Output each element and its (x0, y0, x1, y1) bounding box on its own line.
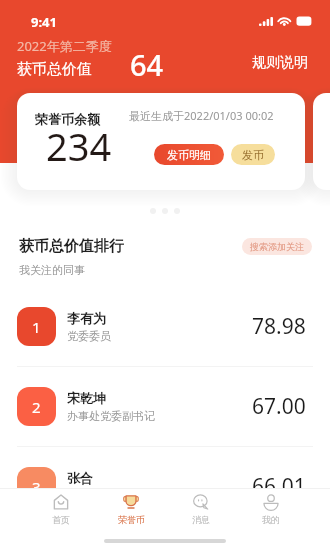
staticText: 发币明细 (167, 148, 211, 162)
staticText: 宋乾坤 (67, 390, 106, 406)
staticText: 消息 (192, 514, 210, 525)
staticText: 2 (32, 397, 41, 417)
staticText: 234 (46, 120, 112, 172)
staticText: 首页 (52, 514, 70, 525)
staticText: 办事处党委副书记 (67, 409, 155, 423)
staticText: 发币 (242, 148, 264, 162)
button[interactable]: Messages (166, 494, 236, 525)
staticText: 规则说明 (252, 54, 308, 72)
staticText: 办事处主任 (67, 489, 122, 503)
staticText: 3 (32, 477, 41, 497)
button[interactable]: 发币 (231, 144, 275, 165)
button[interactable]: 搜索添加关注 (242, 238, 312, 255)
staticText: 荣誉币 (118, 514, 145, 525)
staticText: 获币总价值排行 (19, 237, 124, 256)
staticText: 我的 (262, 514, 280, 525)
staticText: 张合 (67, 470, 93, 486)
staticText: 我关注的同事 (19, 263, 85, 277)
staticText: 党委委员 (67, 329, 111, 343)
staticText: 64 (130, 45, 164, 84)
staticText: 获币总价值 (17, 60, 92, 79)
button[interactable]: 发币明细 (154, 144, 224, 165)
staticText: 2022年第二季度 (17, 37, 112, 55)
staticText: 荣誉币余额 (35, 111, 100, 127)
staticText: 最近生成于2022/01/03 00:02 (129, 108, 274, 123)
staticText: 78.98 (252, 312, 306, 341)
button[interactable]: 3 (0, 447, 330, 526)
staticText: 66.01 (252, 472, 306, 501)
button[interactable]: Home (25, 494, 96, 525)
staticText: 搜索添加关注 (250, 241, 304, 252)
staticText: 李有为 (67, 310, 106, 326)
button[interactable]: Honor coins (96, 494, 166, 525)
staticText: 67.00 (252, 392, 306, 421)
button[interactable]: 1 (0, 287, 330, 366)
staticText: 1 (32, 317, 41, 337)
button[interactable]: 规则说明 (252, 54, 308, 72)
button[interactable]: 2 (0, 367, 330, 446)
button[interactable]: Profile (236, 494, 306, 525)
staticText: 9:41 (31, 13, 57, 31)
